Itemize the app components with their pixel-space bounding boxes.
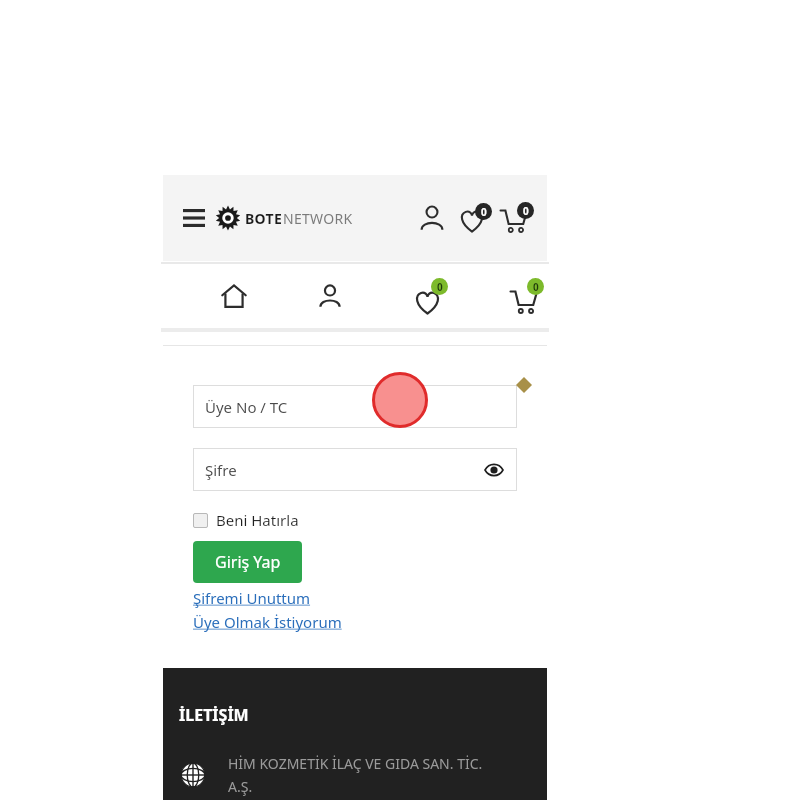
staticText: NETWORK <box>283 209 353 228</box>
button[interactable]: Cart <box>500 272 548 320</box>
staticText: Beni Hatırla <box>216 510 299 530</box>
button[interactable]: Favorites <box>453 197 495 239</box>
other: Show password <box>485 464 503 476</box>
staticText: 0 <box>437 280 443 294</box>
button[interactable]: BOTE <box>215 201 353 235</box>
button[interactable]: Giriş Yap <box>193 541 302 583</box>
staticText: Üye No / TC <box>205 397 288 417</box>
staticText: Giriş Yap <box>215 551 281 573</box>
staticText: Şifremi Unuttum <box>193 588 311 608</box>
button[interactable]: Üye Olmak İstiyorum <box>193 612 342 632</box>
staticText: BOTE <box>245 209 283 228</box>
staticText: İLETİŞİM <box>179 704 249 726</box>
button[interactable]: Favorites <box>403 272 451 320</box>
staticText: Üye Olmak İstiyorum <box>193 612 342 632</box>
button[interactable]: Menu <box>173 197 215 239</box>
button[interactable]: Account <box>411 197 453 239</box>
button[interactable]: Cart <box>495 197 537 239</box>
button[interactable]: Profile <box>306 272 354 320</box>
staticText: 0 <box>523 204 529 218</box>
staticText: Şifre <box>205 460 237 480</box>
staticText: 0 <box>533 280 539 294</box>
button[interactable]: Şifre <box>193 448 517 491</box>
staticText: HİM KOZMETİK İLAÇ VE GIDA SAN. TİC. A.Ş. <box>228 754 538 796</box>
staticText: 0 <box>481 205 487 219</box>
button[interactable]: Üye No / TC <box>193 385 517 428</box>
button[interactable]: Şifremi Unuttum <box>193 588 311 608</box>
button[interactable]: Home <box>210 272 258 320</box>
button[interactable]: Beni Hatırla <box>193 508 299 532</box>
